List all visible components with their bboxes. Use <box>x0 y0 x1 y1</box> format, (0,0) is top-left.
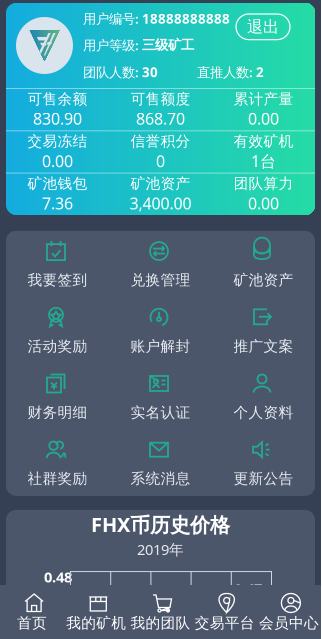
button[interactable]: 交易平台 <box>193 591 257 632</box>
button[interactable]: 我要签到 <box>6 231 109 297</box>
staticText: 矿池资产 <box>130 175 190 193</box>
staticText: 有效矿机 <box>233 132 293 150</box>
staticText: 矿池钱包 <box>27 175 87 193</box>
staticText: 我的团队 <box>130 614 190 632</box>
staticText: 用户等级: <box>83 36 142 54</box>
staticText: 0 <box>156 150 165 171</box>
staticText: 0.00 <box>42 150 73 171</box>
staticText: 830.90 <box>33 108 82 129</box>
staticText: 团队算力 <box>233 175 293 193</box>
button[interactable]: 财务明细 <box>6 363 109 430</box>
staticText: 活动奖励 <box>27 337 87 355</box>
staticText: 30 <box>142 63 158 81</box>
button[interactable]: 系统消息 <box>109 430 212 496</box>
button[interactable]: 兑换管理 <box>109 231 212 297</box>
staticText: 财务明细 <box>27 403 87 421</box>
staticText: 可售余额 <box>27 90 87 108</box>
button[interactable]: 推广文案 <box>212 297 315 363</box>
staticText: 交易冻结 <box>27 132 87 150</box>
staticText: 直推人数: <box>197 63 256 81</box>
staticText: 系统消息 <box>130 470 190 488</box>
staticText: 会员中心 <box>259 614 319 632</box>
staticText: 0.48 <box>44 567 72 586</box>
staticText: 交易平台 <box>195 614 255 632</box>
staticText: 3,400.00 <box>129 193 191 214</box>
button[interactable]: 首页 <box>0 591 64 632</box>
staticText: 退出 <box>247 17 279 37</box>
button[interactable]: 我的矿机 <box>64 591 128 632</box>
staticText: 2 <box>256 63 264 81</box>
staticText: 兑换管理 <box>130 271 190 289</box>
staticText: 我要签到 <box>27 271 87 289</box>
button[interactable]: 实名认证 <box>109 363 212 430</box>
staticText: 首页 <box>17 614 47 632</box>
staticText: 个人资料 <box>233 403 293 421</box>
button[interactable]: 矿池资产 <box>212 231 315 297</box>
button[interactable]: 社群奖励 <box>6 430 109 496</box>
staticText: 可售额度 <box>130 90 190 108</box>
button[interactable]: 个人资料 <box>212 363 315 430</box>
button[interactable]: 更新公告 <box>212 430 315 496</box>
button[interactable]: 活动奖励 <box>6 297 109 363</box>
staticText: 社群奖励 <box>27 470 87 488</box>
staticText: 累计产量 <box>233 90 293 108</box>
staticText: 团队人数: <box>83 63 142 81</box>
button[interactable]: 退出 <box>236 14 290 40</box>
button[interactable]: 我的团队 <box>128 591 193 632</box>
button[interactable]: 会员中心 <box>257 591 321 632</box>
staticText: 868.70 <box>136 108 185 129</box>
button[interactable]: 账户解封 <box>109 297 212 363</box>
staticText: 7.36 <box>42 193 73 214</box>
staticText: 我的矿机 <box>66 614 126 632</box>
staticText: 0.00 <box>248 193 279 214</box>
staticText: 更新公告 <box>233 470 293 488</box>
staticText: 0.00 <box>248 108 279 129</box>
staticText: 2019年 <box>137 540 184 559</box>
staticText: 信誉积分 <box>130 132 190 150</box>
staticText: 1台 <box>251 150 276 171</box>
staticText: 用户编号: <box>83 10 142 27</box>
staticText: FHX币历史价格 <box>91 511 230 538</box>
staticText: 推广文案 <box>233 337 293 355</box>
staticText: 0.47 <box>234 579 262 598</box>
staticText: 三级矿工 <box>142 37 194 53</box>
staticText: 矿池资产 <box>233 271 293 289</box>
staticText: 账户解封 <box>130 337 190 355</box>
staticText: 18888888888 <box>142 10 230 27</box>
staticText: 实名认证 <box>130 403 190 421</box>
